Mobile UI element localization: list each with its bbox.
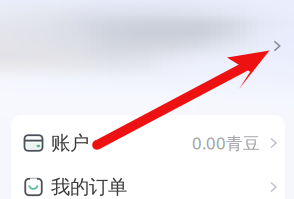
staticText: 我的订单 xyxy=(51,175,127,199)
button[interactable]: Profile detail xyxy=(267,36,287,56)
button[interactable]: 我的订单 xyxy=(11,165,285,199)
staticText: 账户 xyxy=(51,131,89,155)
button[interactable]: 账户 xyxy=(11,121,285,165)
staticText: 0.00青豆 xyxy=(192,132,260,154)
